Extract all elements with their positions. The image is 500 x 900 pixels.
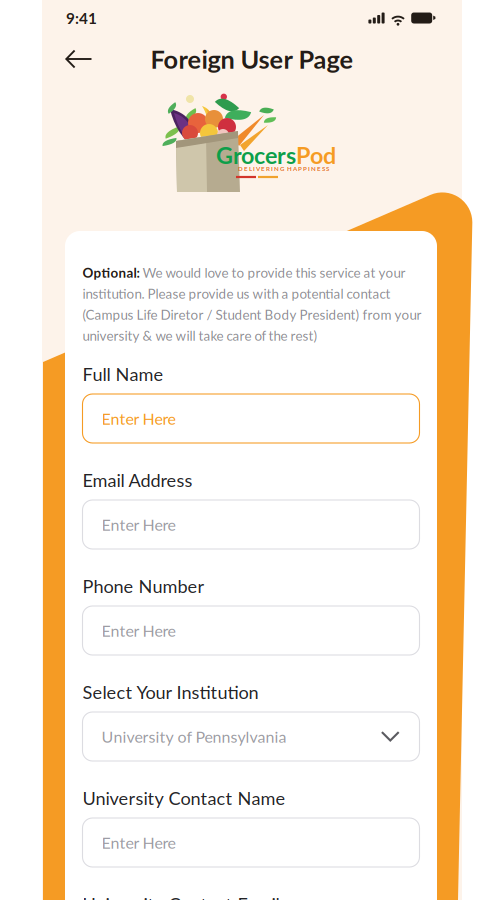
staticText: Enter Here (101, 833, 175, 852)
staticText: Enter Here (101, 621, 175, 640)
staticText: We would love to provide this service at… (139, 264, 405, 281)
staticText: university & we will take care of the re… (82, 327, 317, 344)
staticText: Email Address (82, 469, 192, 491)
staticText: University Contact Name (82, 787, 285, 809)
staticText: Select Your Institution (82, 681, 258, 703)
staticText: University of Pennsylvania (101, 727, 286, 746)
staticText: D E L I V E R I N G H A P P I N E S S (238, 165, 329, 172)
staticText: Grocers (216, 141, 296, 169)
button[interactable]: Enter Here (82, 818, 419, 867)
staticText: Full Name (82, 363, 163, 385)
staticText: (Campus Life Diretor / Student Body Pres… (82, 306, 421, 323)
staticText: Pod (296, 141, 336, 169)
staticText: Enter Here (101, 515, 175, 534)
button[interactable]: Enter Here (82, 500, 419, 549)
staticText: institution. Please provide us with a po… (82, 285, 390, 302)
staticText: Optional: (82, 264, 139, 281)
button[interactable]: Enter Here (82, 606, 419, 655)
button[interactable]: University of Pennsylvania (82, 712, 419, 761)
staticText: University Contact Email (82, 893, 279, 900)
staticText: Enter Here (101, 409, 175, 428)
staticText: Phone Number (82, 575, 204, 597)
staticText: Foreign User Page (150, 44, 353, 74)
button[interactable]: Enter Here (82, 394, 419, 443)
button[interactable]: Back (55, 39, 103, 79)
staticText: 9:41 (66, 9, 97, 27)
